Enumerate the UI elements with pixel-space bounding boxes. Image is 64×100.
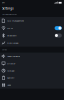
staticText: Apps: [7, 84, 11, 86]
staticText: DEVICE: [2, 49, 7, 50]
staticText: Bluetooth: [7, 34, 16, 37]
staticText: NETWORK & INTERNET: [2, 13, 17, 15]
button[interactable]: Bluetooth: [0, 32, 64, 39]
button[interactable]: Data usage: [0, 39, 64, 47]
staticText: Data usage: [7, 41, 18, 44]
button[interactable]: Wi-Fi: [0, 24, 64, 32]
staticText: Audio profiles: [7, 55, 20, 58]
staticText: Settings: [2, 7, 13, 10]
button[interactable]: Audio profiles: [0, 53, 64, 60]
staticText: Display: [7, 62, 15, 65]
button[interactable]: Storage: [0, 67, 64, 74]
staticText: Battery: [7, 76, 14, 79]
staticText: Storage: [7, 69, 14, 72]
staticText: Wi-Fi: [7, 27, 13, 29]
staticText: 9:41: [2, 1, 5, 4]
button[interactable]: Battery: [0, 74, 64, 81]
staticText: SIM management: [7, 19, 24, 22]
button[interactable]: Display: [0, 60, 64, 67]
button[interactable]: Apps: [0, 81, 64, 89]
button[interactable]: SIM management: [0, 17, 64, 24]
